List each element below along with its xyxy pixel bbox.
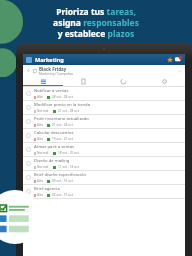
staticText: Black Friday (39, 66, 67, 72)
button[interactable]: Notifications (175, 56, 182, 63)
staticText: Calcular descuentos (34, 130, 74, 136)
staticText: Pedir inventario actualizado (34, 116, 89, 122)
button[interactable]: Tasks (23, 76, 63, 86)
staticText: Normal (37, 165, 49, 169)
other: Back (26, 68, 31, 73)
staticText: Alta (37, 123, 43, 127)
staticText: 28 oct - 28 oct (52, 95, 73, 99)
staticText: Modificar precio en la tienda (34, 102, 91, 108)
staticText: 21 oct - 24 oct (52, 123, 73, 127)
button[interactable]: Brief agencia (23, 185, 185, 198)
staticText: Diseño de mailing (34, 158, 70, 164)
button[interactable]: Settings (144, 76, 185, 86)
button[interactable]: Modificar precio en la tienda (23, 101, 185, 114)
button[interactable]: Attachments (103, 76, 144, 86)
staticText: Normal (37, 109, 49, 113)
button[interactable]: Calcular descuentos (23, 129, 185, 142)
button[interactable]: Files (63, 76, 103, 86)
staticText: 05 oct - 15 oct (52, 193, 73, 197)
button[interactable]: App icon (0, 190, 42, 244)
staticText: 19 oct - 27 oct (52, 137, 73, 141)
staticText: Alta (37, 95, 43, 99)
staticText: Marketing (35, 56, 64, 63)
staticText: Brief diseño especificación (34, 172, 87, 178)
button[interactable]: More options (176, 68, 182, 74)
staticText: Notificar a ventas (34, 88, 69, 94)
staticText: 09 oct - 16 oct (52, 179, 73, 183)
staticText: Prioriza tus tareas, asigna responsables… (0, 6, 192, 39)
button[interactable]: Diseño de mailing (23, 157, 185, 170)
staticText: 18 oct - 25 oct (58, 151, 79, 155)
staticText: 21 oct - 28 oct (58, 109, 79, 113)
button[interactable]: Favorite (166, 56, 173, 63)
staticText: Armar pack a ventas (34, 144, 75, 150)
staticText: Alta (37, 193, 43, 197)
button[interactable]: Armar pack a ventas (23, 143, 185, 156)
staticText: 11 oct - 18 oct (58, 165, 79, 169)
staticText: Marketing / Campañas (39, 72, 74, 76)
staticText: Alta (37, 137, 43, 141)
staticText: Normal (37, 151, 49, 155)
staticText: Alta (37, 179, 43, 183)
button[interactable]: Notificar a ventas (23, 87, 185, 100)
button[interactable]: Back (23, 65, 185, 76)
staticText: Brief agencia (34, 186, 60, 192)
button[interactable]: Brief diseño especificación (23, 171, 185, 184)
button[interactable]: App menu (26, 57, 32, 63)
button[interactable]: Pedir inventario actualizado (23, 115, 185, 128)
